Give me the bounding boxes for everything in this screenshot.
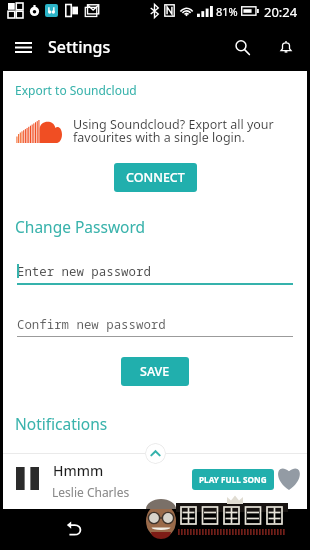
staticText: Notifications: [15, 413, 108, 434]
staticText: Leslie Charles: [52, 484, 130, 500]
staticText: Export to Soundcloud: [15, 82, 137, 98]
button[interactable]: SAVE: [121, 357, 189, 386]
button[interactable]: Menu: [0, 24, 46, 70]
staticText: Change Password: [15, 216, 146, 237]
staticText: PLAY FULL SONG: [199, 474, 267, 485]
button[interactable]: Notifications: [264, 25, 308, 69]
staticText: Using Soundcloud? Export all your favour…: [73, 116, 293, 146]
staticText: Enter new password: [17, 263, 151, 280]
staticText: 20:24: [264, 3, 298, 21]
staticText: SAVE: [140, 363, 170, 380]
button[interactable]: Expand player: [145, 443, 166, 464]
button[interactable]: Pause: [8, 461, 46, 495]
staticText: CONNECT: [126, 169, 185, 186]
staticText: Hmmm: [53, 461, 104, 480]
button[interactable]: CONNECT: [114, 163, 197, 192]
staticText: Confirm new password: [17, 316, 166, 333]
staticText: 81%: [216, 4, 238, 19]
button[interactable]: Favourite: [272, 461, 305, 494]
staticText: Settings: [48, 36, 111, 58]
button[interactable]: PLAY FULL SONG: [192, 469, 274, 490]
button[interactable]: Back: [55, 510, 91, 546]
button[interactable]: Search: [220, 25, 264, 69]
